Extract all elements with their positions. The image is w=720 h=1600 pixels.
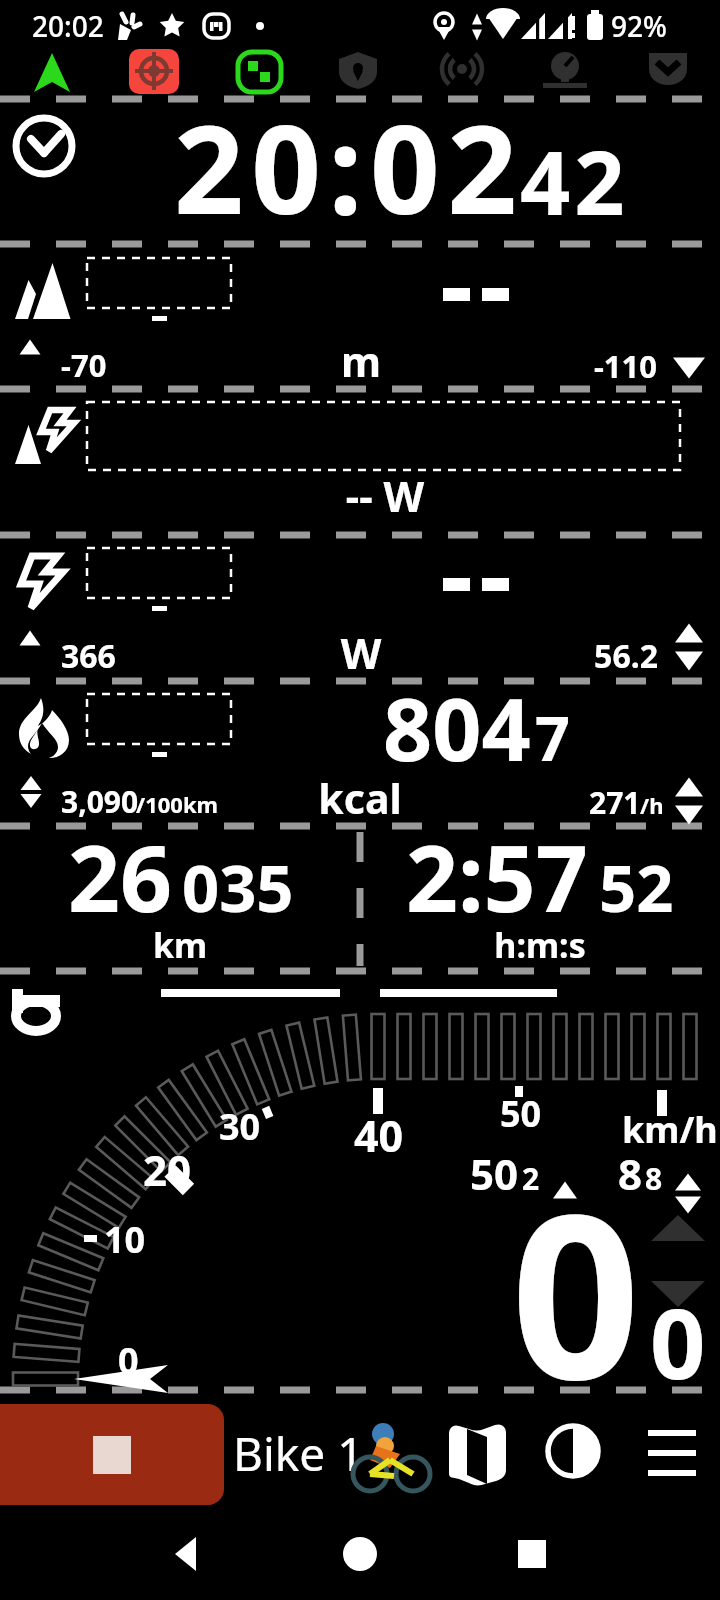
staticText: 0 [650, 1275, 706, 1407]
staticText: -70 [61, 344, 107, 386]
staticText: km/h [622, 1105, 718, 1154]
staticText: 42 [520, 121, 629, 241]
staticText: km [0, 922, 480, 968]
staticText: 0 [511, 1137, 641, 1445]
button[interactable]: Menu [647, 1424, 699, 1480]
staticText: 2 [522, 1158, 540, 1199]
staticText: h:m:s [240, 922, 720, 968]
staticText: 2:57 [406, 815, 588, 939]
staticText: m [61, 333, 661, 389]
staticText: Bike 1 [233, 1422, 364, 1485]
staticText: /h [640, 790, 664, 820]
staticText: 8 [645, 1158, 663, 1199]
staticText: 20:02 [32, 7, 104, 45]
staticText: 20:02 [174, 84, 525, 250]
staticText: 366 [61, 634, 116, 678]
staticText: kcal [60, 770, 660, 826]
staticText: W [61, 624, 661, 681]
staticText: 26 [68, 815, 173, 939]
staticText: 50 [500, 1089, 542, 1138]
staticText: -110 [37, 345, 657, 387]
staticText: 50 [470, 1145, 519, 1202]
staticText: 804 [383, 669, 531, 786]
staticText: 40 [354, 1106, 404, 1165]
staticText: 271 [589, 782, 641, 823]
staticText: 92% [611, 7, 667, 45]
staticText: /100km [136, 789, 218, 819]
staticText: 3,090 [61, 781, 139, 822]
staticText: 035 [182, 843, 294, 932]
button[interactable]: Stop recording [0, 1404, 224, 1505]
staticText: 0 [118, 1336, 139, 1385]
staticText: 20 [143, 1141, 192, 1198]
staticText: 52 [599, 843, 674, 932]
staticText: 8 [618, 1145, 643, 1202]
staticText: 56.2 [38, 634, 658, 678]
button[interactable]: Brightness [545, 1423, 602, 1480]
staticText: -- W [85, 467, 685, 524]
staticText: 30 [219, 1102, 261, 1151]
button[interactable]: Map [446, 1420, 510, 1486]
staticText: 7 [535, 696, 570, 779]
staticText: 10 [104, 1215, 146, 1264]
